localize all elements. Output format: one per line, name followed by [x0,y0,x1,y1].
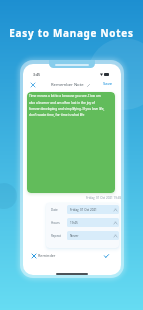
button[interactable]: Confirm [100,249,113,262]
staticText: Save [103,81,113,87]
staticText: Friday, 01 Oct 2021 19:45 [86,196,121,200]
button[interactable]: Hours [46,218,119,227]
staticText: Friday, 01 Oct 2021 [70,208,97,212]
staticText: Reminder [38,253,56,258]
staticText: Time means a lot to a because you see. I… [29,94,106,117]
staticText: Hours [51,221,60,225]
staticText: Remember Note [51,82,84,88]
button[interactable]: Repeat [46,231,119,240]
button[interactable]: Save [101,79,115,89]
button[interactable]: Close [26,78,39,91]
button[interactable]: Cancel reminder [27,249,40,262]
other: Edit [87,84,90,87]
staticText: Easy to Manage Notes [9,26,134,39]
staticText: Repeat [51,234,61,238]
staticText: Never [70,234,79,238]
button[interactable]: Date [46,205,119,214]
staticText: 19:45 [70,221,78,225]
staticText: 3:45 [33,72,41,77]
staticText: Date [51,208,58,212]
button[interactable]: Time means a lot to a because you see. I… [27,92,115,193]
